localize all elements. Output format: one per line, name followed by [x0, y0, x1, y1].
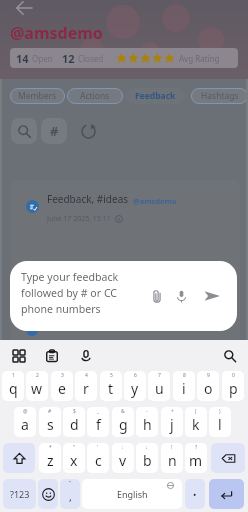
staticText: *	[49, 444, 52, 451]
button[interactable]: #	[39, 407, 61, 437]
staticText: r	[83, 379, 89, 398]
button[interactable]: +	[161, 407, 183, 437]
button[interactable]: Attach file	[146, 285, 168, 307]
staticText: e	[58, 379, 66, 398]
button[interactable]: Search	[11, 118, 37, 144]
button[interactable]: Period	[185, 479, 205, 509]
staticText: •	[69, 479, 71, 486]
button[interactable]: 5	[100, 371, 122, 401]
staticText: a	[21, 415, 29, 434]
button[interactable]: Search	[219, 345, 240, 366]
button[interactable]: "	[63, 443, 85, 473]
staticText: @amsdemo	[133, 196, 177, 206]
button[interactable]: Clipboard	[41, 345, 62, 366]
staticText: 5	[110, 372, 113, 379]
staticText: Closed	[78, 53, 104, 64]
staticText: 0	[232, 372, 235, 379]
button[interactable]: '	[87, 443, 109, 473]
button[interactable]: 2	[26, 371, 48, 401]
button[interactable]: English	[82, 479, 182, 509]
staticText: ;	[146, 444, 148, 451]
button[interactable]: 0	[222, 371, 244, 401]
button[interactable]: Members	[10, 88, 65, 104]
button[interactable]: _	[87, 407, 109, 437]
staticText: 9	[207, 372, 210, 379]
button[interactable]: Shift	[3, 443, 35, 473]
staticText: 1	[12, 372, 15, 379]
staticText: u	[155, 379, 164, 398]
staticText: '	[97, 444, 99, 451]
button[interactable]: $	[63, 407, 85, 437]
button[interactable]: Enter	[209, 479, 244, 509]
button[interactable]: 7	[148, 371, 170, 401]
staticText: +	[171, 408, 174, 415]
button[interactable]: Symbols	[3, 479, 36, 509]
staticText: y	[131, 379, 139, 398]
button[interactable]: &	[112, 407, 134, 437]
button[interactable]: ?	[185, 443, 207, 473]
button[interactable]: Hashtag	[41, 118, 67, 144]
staticText: @amsdemo	[10, 22, 103, 44]
button[interactable]: 4	[75, 371, 97, 401]
staticText: English	[117, 488, 148, 500]
button[interactable]: Emoji	[38, 479, 58, 509]
button[interactable]: 1	[2, 371, 24, 401]
staticText: :	[122, 444, 124, 451]
button[interactable]: Voice input	[75, 345, 96, 366]
button[interactable]: Hashtags	[191, 88, 248, 104]
staticText: #	[50, 122, 59, 140]
button[interactable]: Send	[201, 285, 223, 307]
staticText: Hashtags	[201, 90, 239, 102]
button[interactable]: -	[136, 407, 158, 437]
button[interactable]: )	[209, 407, 231, 437]
staticText: j	[170, 415, 174, 434]
staticText: ,	[69, 489, 72, 504]
button[interactable]: (	[185, 407, 207, 437]
staticText: f	[96, 415, 101, 434]
staticText: 12	[62, 51, 75, 66]
staticText: $	[73, 408, 76, 415]
staticText: 6	[134, 372, 137, 379]
button[interactable]: Back	[15, 0, 33, 17]
staticText: z	[47, 451, 54, 470]
staticText: 14	[16, 51, 29, 66]
staticText: 2	[36, 372, 39, 379]
staticText: 8	[183, 372, 186, 379]
staticText: b	[143, 451, 152, 470]
staticText: #	[48, 408, 52, 415]
button[interactable]: Actions	[67, 88, 123, 104]
button[interactable]: Feedback	[126, 88, 185, 104]
staticText: w	[31, 379, 43, 398]
staticText: "	[73, 444, 76, 451]
button[interactable]: *	[39, 443, 61, 473]
staticText: m	[189, 451, 203, 470]
button[interactable]: :	[112, 443, 134, 473]
staticText: !	[171, 444, 173, 451]
staticText: 7	[158, 372, 161, 379]
button[interactable]: Comma	[60, 479, 80, 509]
staticText: )	[219, 408, 221, 415]
button[interactable]: !	[161, 443, 183, 473]
staticText: _	[97, 408, 100, 415]
staticText: followed by # or CC	[21, 286, 118, 300]
button[interactable]: Keyboard modes	[8, 345, 29, 366]
button[interactable]: 8	[173, 371, 195, 401]
button[interactable]: Feedback, #ideas	[10, 180, 240, 236]
button[interactable]: 9	[197, 371, 219, 401]
staticText: i	[182, 379, 186, 398]
button[interactable]: @	[14, 407, 36, 437]
button[interactable]: Backspace	[211, 443, 245, 473]
staticText: n	[168, 451, 177, 470]
staticText: p	[229, 379, 238, 398]
staticText: l	[218, 415, 222, 434]
staticText: o	[204, 379, 213, 398]
staticText: Actions	[80, 90, 110, 102]
button[interactable]: Refresh	[76, 119, 100, 143]
staticText: Type your feedback	[21, 270, 119, 284]
button[interactable]: ;	[136, 443, 158, 473]
button[interactable]: 6	[124, 371, 146, 401]
button[interactable]: Voice message	[170, 285, 192, 307]
button[interactable]: 3	[51, 371, 73, 401]
staticText: x	[70, 451, 78, 470]
staticText: &	[121, 408, 125, 415]
